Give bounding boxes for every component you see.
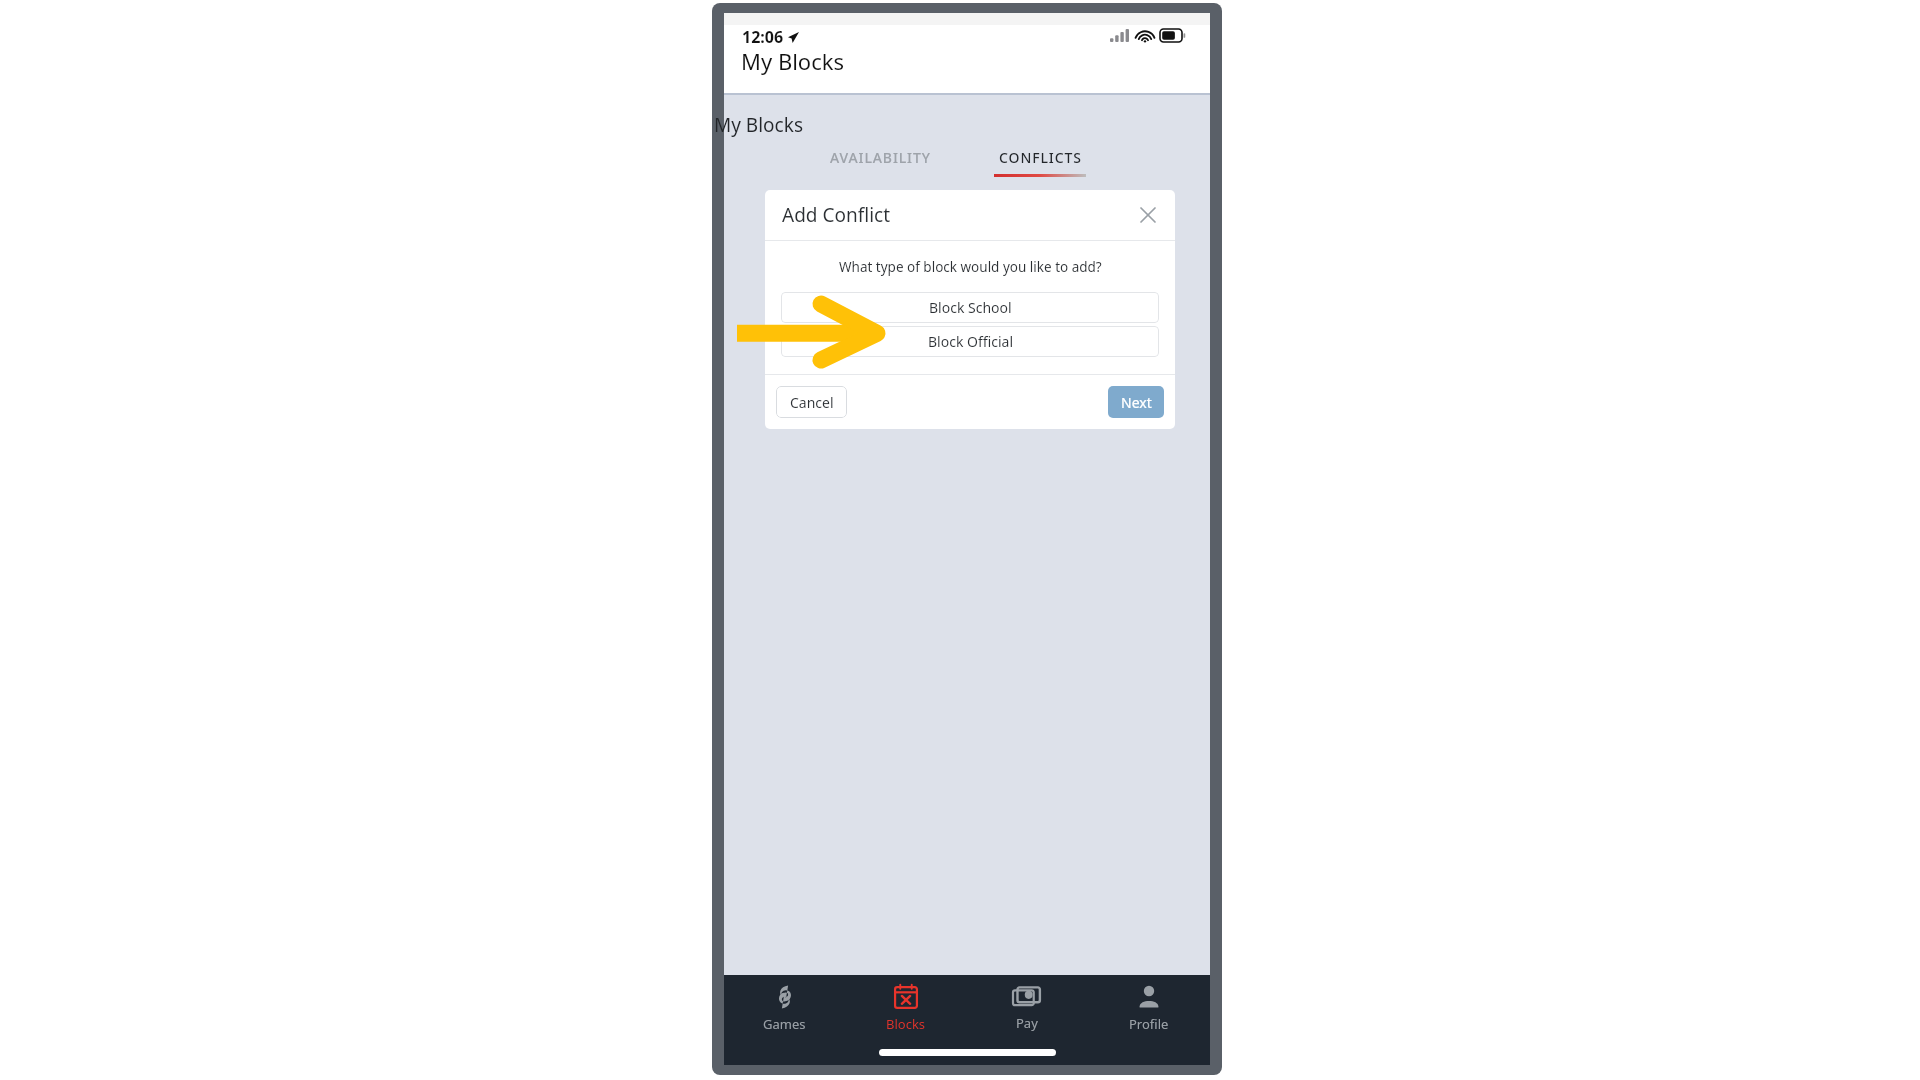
staticText: CONFLICTS <box>999 148 1082 167</box>
staticText: My Blocks <box>741 46 845 76</box>
staticText: Games <box>763 1015 806 1033</box>
staticText: Block School <box>929 298 1012 317</box>
button[interactable]: CONFLICTS <box>980 148 1100 184</box>
staticText: AVAILABILITY <box>830 148 931 167</box>
staticText: My Blocks <box>714 112 803 138</box>
staticText: Blocks <box>886 1015 926 1033</box>
button[interactable]: Block School <box>781 292 1159 323</box>
staticText: Block Official <box>928 332 1013 351</box>
button[interactable]: Block Official <box>781 326 1159 357</box>
staticText: What type of block would you like to add… <box>839 258 1102 276</box>
staticText: Add Conflict <box>782 202 891 228</box>
staticText: Profile <box>1129 1015 1169 1033</box>
button[interactable]: Next <box>1108 386 1164 418</box>
button[interactable]: Close <box>1133 200 1163 230</box>
button[interactable]: Pay <box>966 975 1088 1041</box>
button[interactable]: Blocks <box>845 975 966 1041</box>
staticText: Next <box>1121 393 1152 412</box>
button[interactable]: Cancel <box>776 386 847 418</box>
button[interactable]: Games <box>724 975 845 1041</box>
button[interactable]: Profile <box>1088 975 1210 1041</box>
staticText: Cancel <box>790 393 834 412</box>
button[interactable]: AVAILABILITY <box>820 148 940 184</box>
staticText: 12:06 <box>742 26 784 48</box>
staticText: Pay <box>1016 1014 1038 1032</box>
